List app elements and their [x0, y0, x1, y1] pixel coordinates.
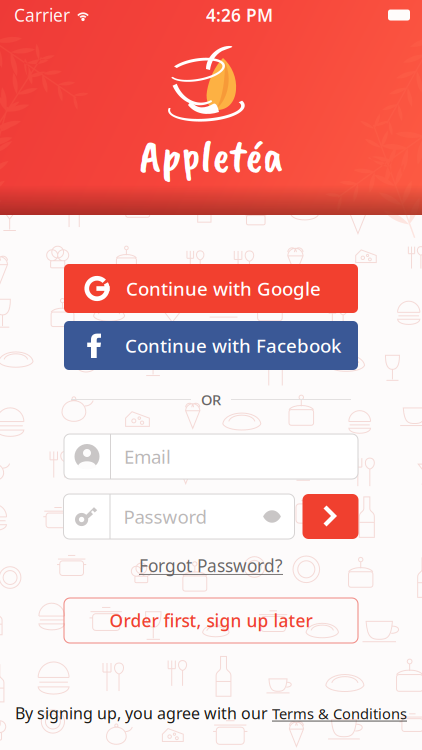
staticText: OR	[201, 390, 221, 409]
staticText: Email	[124, 444, 171, 469]
staticText: Forgot Password?	[139, 554, 283, 577]
button[interactable]: Forgot Password?	[139, 552, 283, 579]
staticText: 4:26 PM	[206, 3, 273, 26]
staticText: Appletéa	[139, 127, 282, 184]
button[interactable]: Sign in	[302, 494, 358, 539]
staticText: Password	[123, 504, 206, 529]
button[interactable]: Show password	[262, 509, 294, 524]
staticText: By signing up, you agree with our Terms …	[15, 702, 407, 724]
button[interactable]: Continue with Facebook	[64, 321, 358, 370]
button[interactable]: Continue with Google	[64, 264, 358, 313]
staticText: Carrier	[14, 3, 70, 26]
staticText: Order first, sign up later	[109, 609, 312, 632]
button[interactable]: Order first, sign up later	[64, 598, 358, 643]
staticText: Continue with Facebook	[125, 333, 341, 358]
button[interactable]: By signing up, you agree with our Terms …	[3, 703, 419, 723]
staticText: Continue with Google	[126, 276, 321, 301]
